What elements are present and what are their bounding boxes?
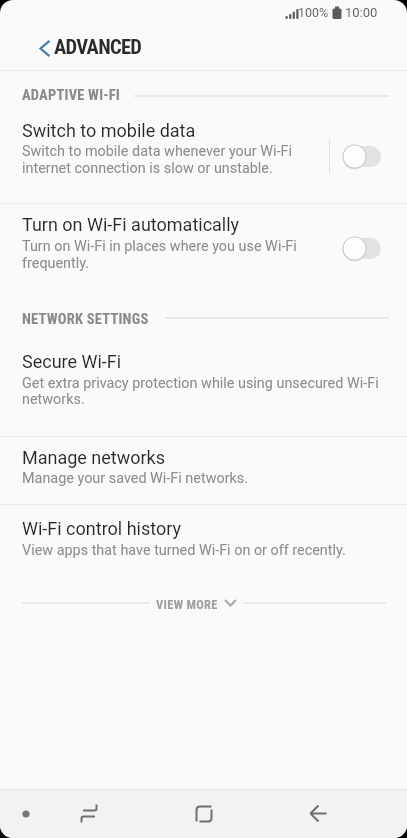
staticText: ADAPTIVE WI-FI xyxy=(22,87,120,104)
button[interactable] xyxy=(28,32,60,64)
button[interactable] xyxy=(0,336,407,436)
staticText: ADVANCED xyxy=(54,35,142,59)
button[interactable] xyxy=(0,72,329,203)
staticText: Wi-Fi control history xyxy=(22,518,181,539)
button[interactable] xyxy=(329,108,407,203)
staticText: Secure Wi-Fi xyxy=(22,351,122,372)
staticText: frequently. xyxy=(22,255,90,272)
staticText: VIEW MORE xyxy=(156,597,218,612)
staticText: Switch to mobile data xyxy=(22,120,196,141)
staticText: Turn on Wi-Fi in places where you use Wi… xyxy=(22,238,297,255)
staticText: Manage your saved Wi-Fi networks. xyxy=(22,470,249,487)
staticText: 10:00 xyxy=(345,5,378,20)
button[interactable] xyxy=(294,789,342,838)
staticText: networks. xyxy=(22,391,85,408)
staticText: Turn on Wi-Fi automatically xyxy=(22,214,240,235)
staticText: Get extra privacy protection while using… xyxy=(22,375,379,392)
button[interactable] xyxy=(0,204,407,304)
staticText: Switch to mobile data whenever your Wi-F… xyxy=(22,143,292,160)
button[interactable] xyxy=(0,505,407,575)
staticText: internet connection is slow or unstable. xyxy=(22,160,273,177)
staticText: 100% xyxy=(298,5,329,20)
staticText: View apps that have turned Wi-Fi on or o… xyxy=(22,542,346,559)
staticText: Manage networks xyxy=(22,447,166,468)
button[interactable] xyxy=(0,437,407,504)
button[interactable] xyxy=(64,789,112,838)
button[interactable] xyxy=(179,789,227,838)
button[interactable] xyxy=(140,588,267,618)
staticText: NETWORK SETTINGS xyxy=(22,311,149,328)
